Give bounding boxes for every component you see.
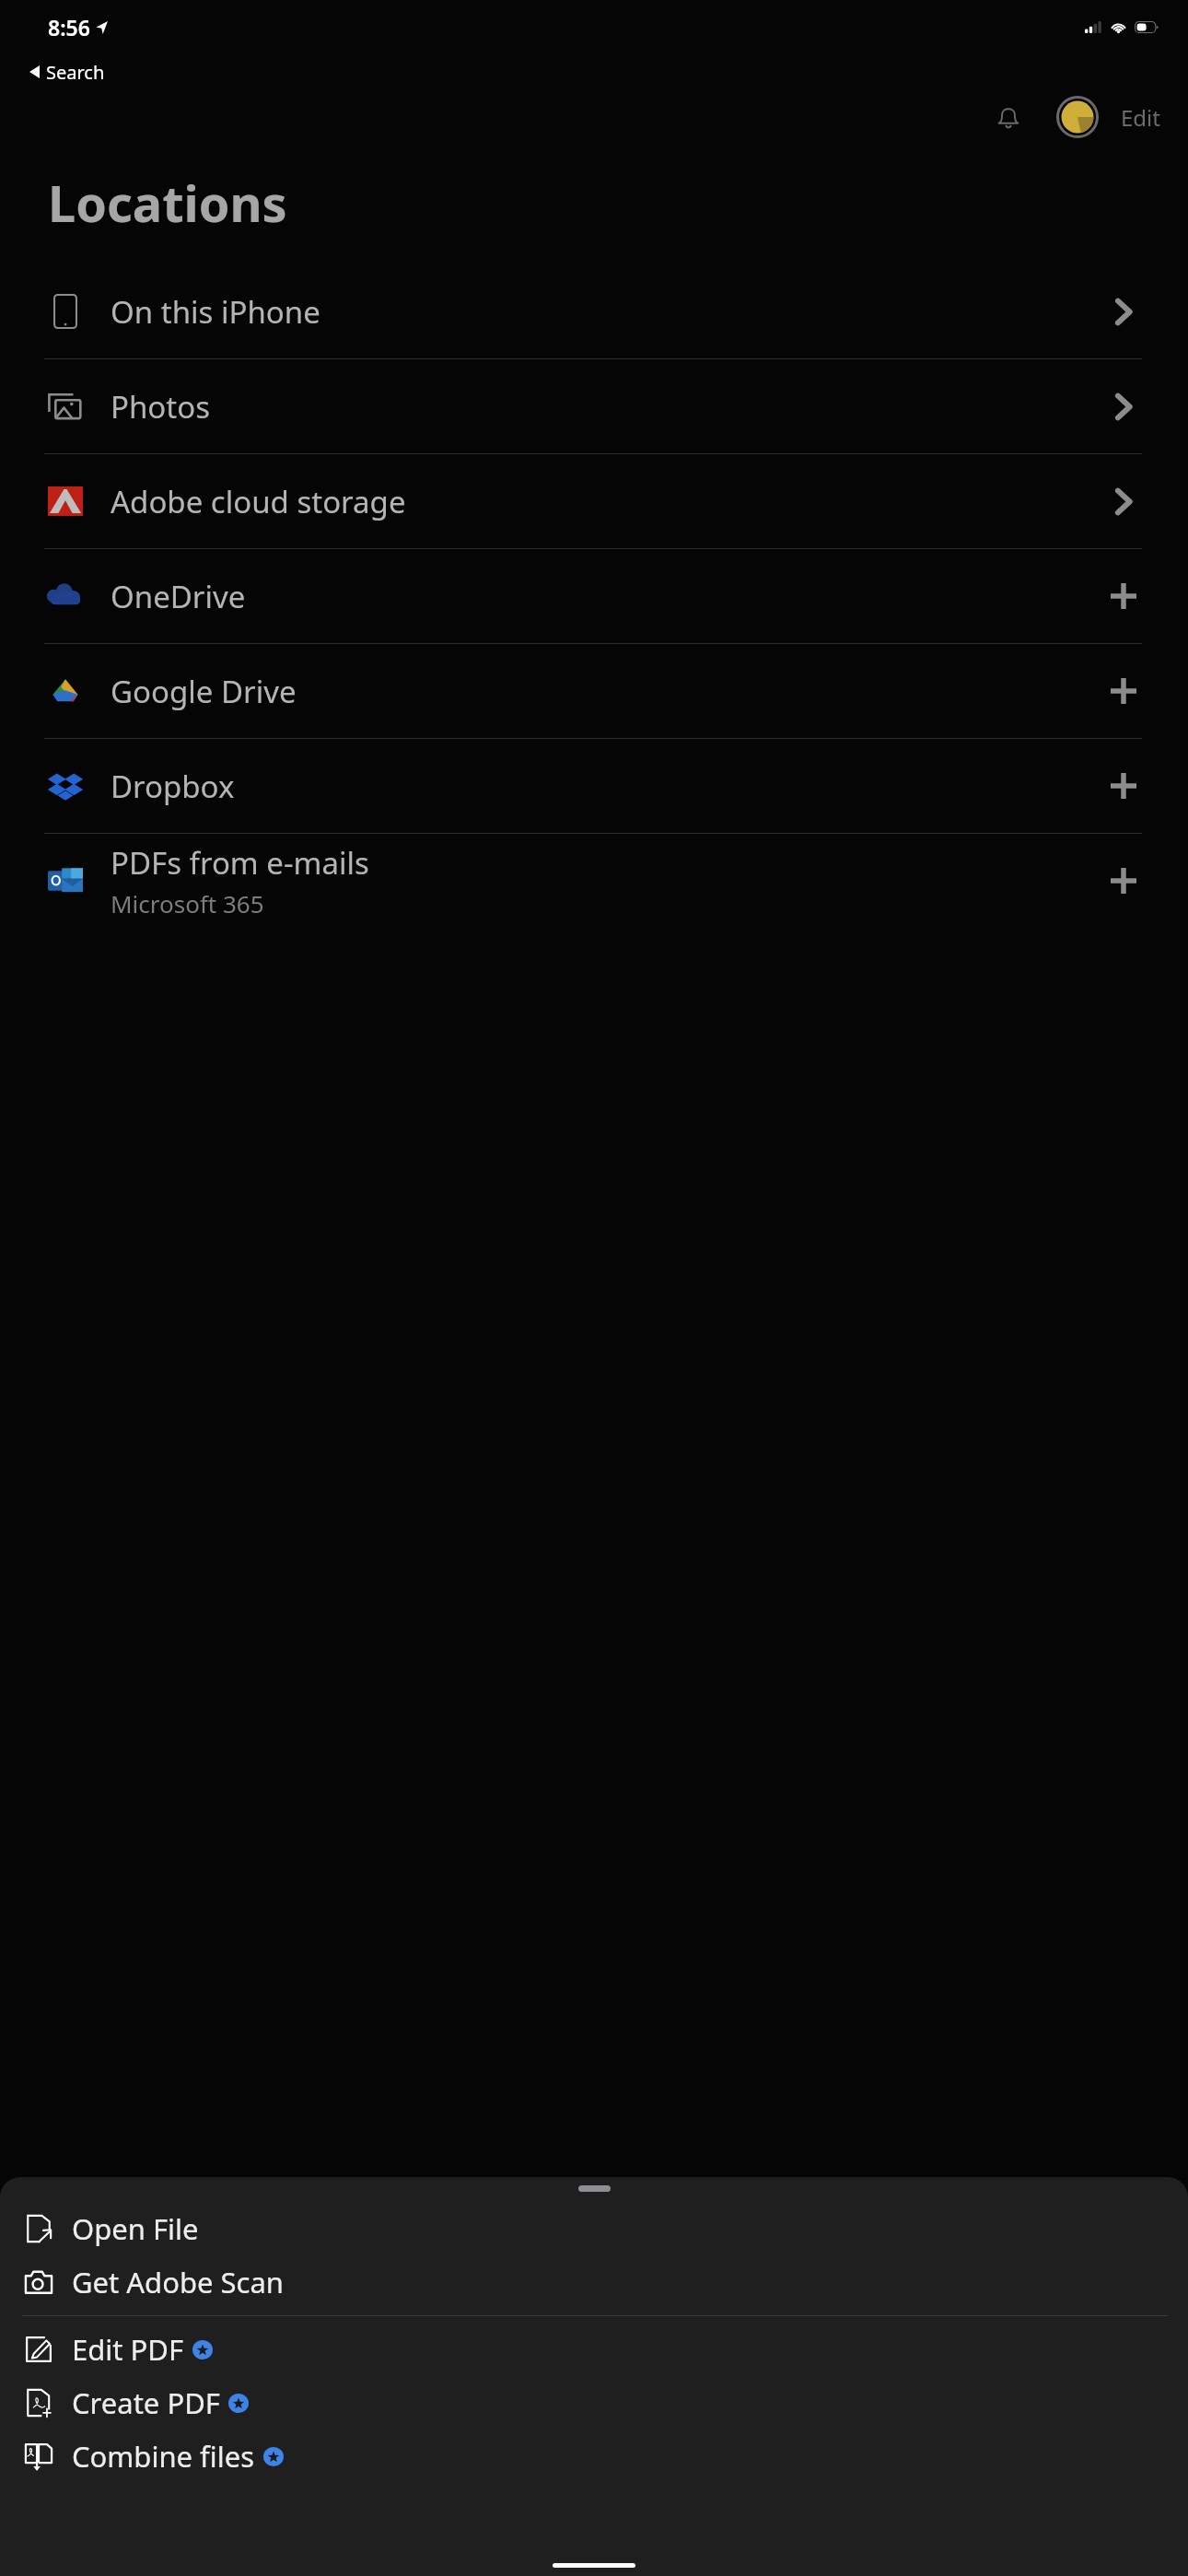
- button[interactable]: Dropbox: [0, 739, 1188, 833]
- button[interactable]: Edit PDF: [0, 2323, 1188, 2376]
- button[interactable]: Combine files: [0, 2430, 1188, 2483]
- button[interactable]: Edit: [1113, 93, 1168, 142]
- button[interactable]: Google Drive: [0, 644, 1188, 738]
- button[interactable]: Photos: [0, 359, 1188, 453]
- button[interactable]: Create PDF: [0, 2376, 1188, 2430]
- staticText: Search: [46, 60, 105, 85]
- staticText: Adobe cloud storage: [111, 481, 406, 522]
- staticText: On this iPhone: [111, 291, 320, 333]
- staticText: Combine files: [72, 2437, 255, 2476]
- staticText: Photos: [111, 386, 211, 427]
- button[interactable]: Adobe cloud storage: [0, 454, 1188, 548]
- button[interactable]: Notifications: [981, 89, 1036, 145]
- staticText: Open File: [72, 2209, 199, 2248]
- staticText: Microsoft 365: [111, 887, 264, 919]
- staticText: Edit PDF: [72, 2330, 184, 2369]
- button[interactable]: Open File: [0, 2202, 1188, 2255]
- button[interactable]: Profile: [1051, 90, 1104, 144]
- staticText: Dropbox: [111, 766, 235, 807]
- button[interactable]: On this iPhone: [0, 264, 1188, 358]
- staticText: Locations: [48, 169, 287, 237]
- staticText: OneDrive: [111, 576, 246, 617]
- staticText: Create PDF: [72, 2383, 220, 2422]
- button[interactable]: PDFs from e-mails: [0, 834, 1188, 928]
- button[interactable]: Get Adobe Scan: [0, 2255, 1188, 2309]
- button[interactable]: OneDrive: [0, 549, 1188, 643]
- staticText: Google Drive: [111, 671, 297, 712]
- button[interactable]: Search: [0, 54, 1188, 89]
- staticText: Edit: [1121, 102, 1160, 133]
- staticText: PDFs from e-mails: [111, 842, 369, 884]
- staticText: 8:56: [48, 13, 90, 41]
- staticText: Get Adobe Scan: [72, 2263, 284, 2301]
